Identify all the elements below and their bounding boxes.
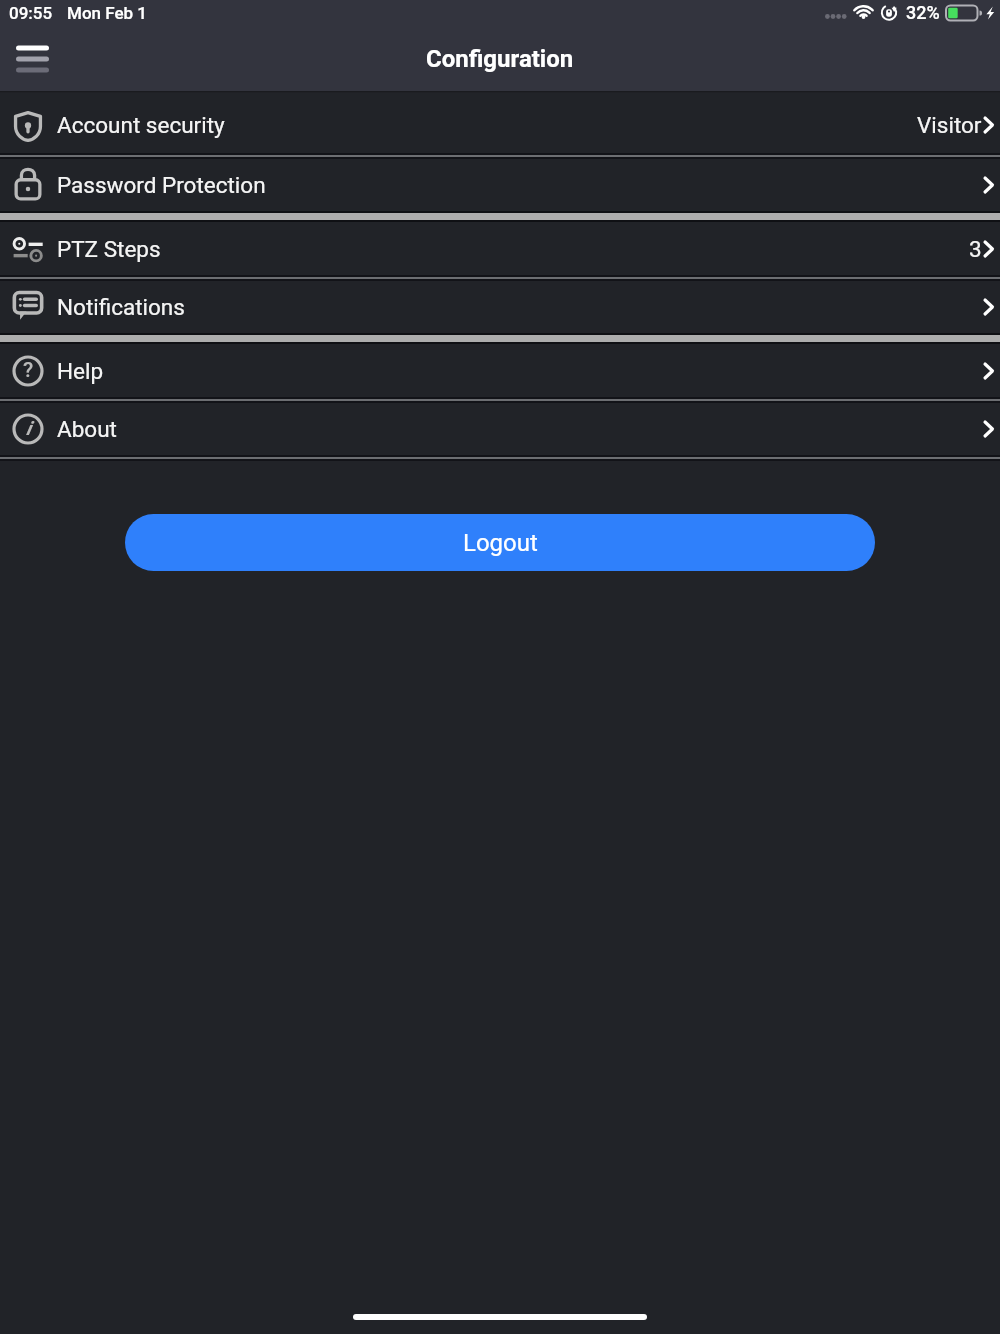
staticText: 32% bbox=[906, 2, 940, 23]
staticText: Password Protection bbox=[57, 172, 266, 198]
staticText: Account security bbox=[57, 112, 225, 138]
staticText: Mon Feb 1 bbox=[67, 3, 148, 23]
button[interactable]: Logout bbox=[125, 514, 875, 571]
button[interactable]: Password Protection bbox=[0, 159, 1000, 211]
button[interactable]: Open navigation menu bbox=[5, 32, 59, 86]
staticText: PTZ Steps bbox=[57, 236, 161, 262]
button[interactable]: ? bbox=[0, 344, 1000, 397]
staticText: Configuration bbox=[426, 45, 574, 73]
staticText: 3 bbox=[969, 236, 982, 262]
button[interactable]: Notifications bbox=[0, 281, 1000, 333]
staticText: Notifications bbox=[57, 294, 185, 320]
button[interactable]: PTZ Steps bbox=[0, 222, 1000, 275]
staticText: 09:55 bbox=[9, 3, 53, 23]
button[interactable]: i bbox=[0, 403, 1000, 455]
staticText: ? bbox=[23, 358, 34, 383]
button[interactable]: Account security bbox=[0, 93, 1000, 153]
staticText: Help bbox=[57, 358, 104, 384]
staticText: i bbox=[26, 417, 31, 439]
staticText: Visitor bbox=[917, 112, 982, 138]
staticText: Logout bbox=[463, 529, 538, 557]
staticText: About bbox=[57, 416, 117, 442]
